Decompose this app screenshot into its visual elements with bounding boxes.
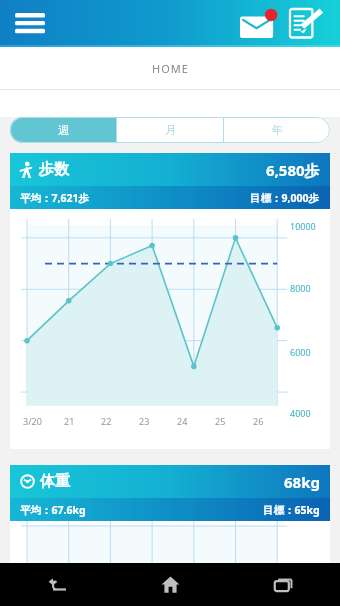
staticText: 26 xyxy=(253,415,264,427)
button[interactable]: Back xyxy=(0,563,114,606)
staticText: 8000 xyxy=(290,282,311,294)
staticText: 25 xyxy=(215,415,226,427)
staticText: 年 xyxy=(272,123,283,137)
button[interactable]: Home xyxy=(114,563,227,606)
staticText: 21 xyxy=(64,415,75,427)
staticText: 22 xyxy=(101,415,112,427)
button[interactable]: Notes xyxy=(284,2,328,46)
button[interactable]: 月 xyxy=(117,117,223,143)
staticText: 23 xyxy=(139,415,150,427)
button[interactable]: 歩数 xyxy=(10,153,330,449)
button[interactable]: Recents xyxy=(227,563,340,606)
staticText: 歩数 xyxy=(39,160,69,179)
staticText: HOME xyxy=(152,61,189,76)
staticText: 4000 xyxy=(290,407,311,419)
staticText: 週 xyxy=(58,123,69,137)
button[interactable]: 体重 xyxy=(10,465,330,563)
staticText: 6000 xyxy=(290,346,311,358)
staticText: 24 xyxy=(177,415,188,427)
staticText: 目標：65kg xyxy=(263,503,320,517)
button[interactable]: 年 xyxy=(224,117,330,143)
button[interactable]: 週 xyxy=(10,117,116,143)
staticText: 3/20 xyxy=(23,415,42,427)
staticText: 6,580歩 xyxy=(266,160,320,180)
staticText: 目標：9,000歩 xyxy=(250,191,320,205)
staticText: 平均：67.6kg xyxy=(20,503,86,517)
staticText: 月 xyxy=(165,123,176,137)
staticText: 10000 xyxy=(290,220,316,232)
staticText: 平均：7,621歩 xyxy=(20,191,90,205)
button[interactable]: Menu xyxy=(10,4,50,44)
button[interactable]: Messages xyxy=(236,2,280,46)
staticText: 体重 xyxy=(40,472,70,491)
staticText: 68kg xyxy=(284,472,320,492)
